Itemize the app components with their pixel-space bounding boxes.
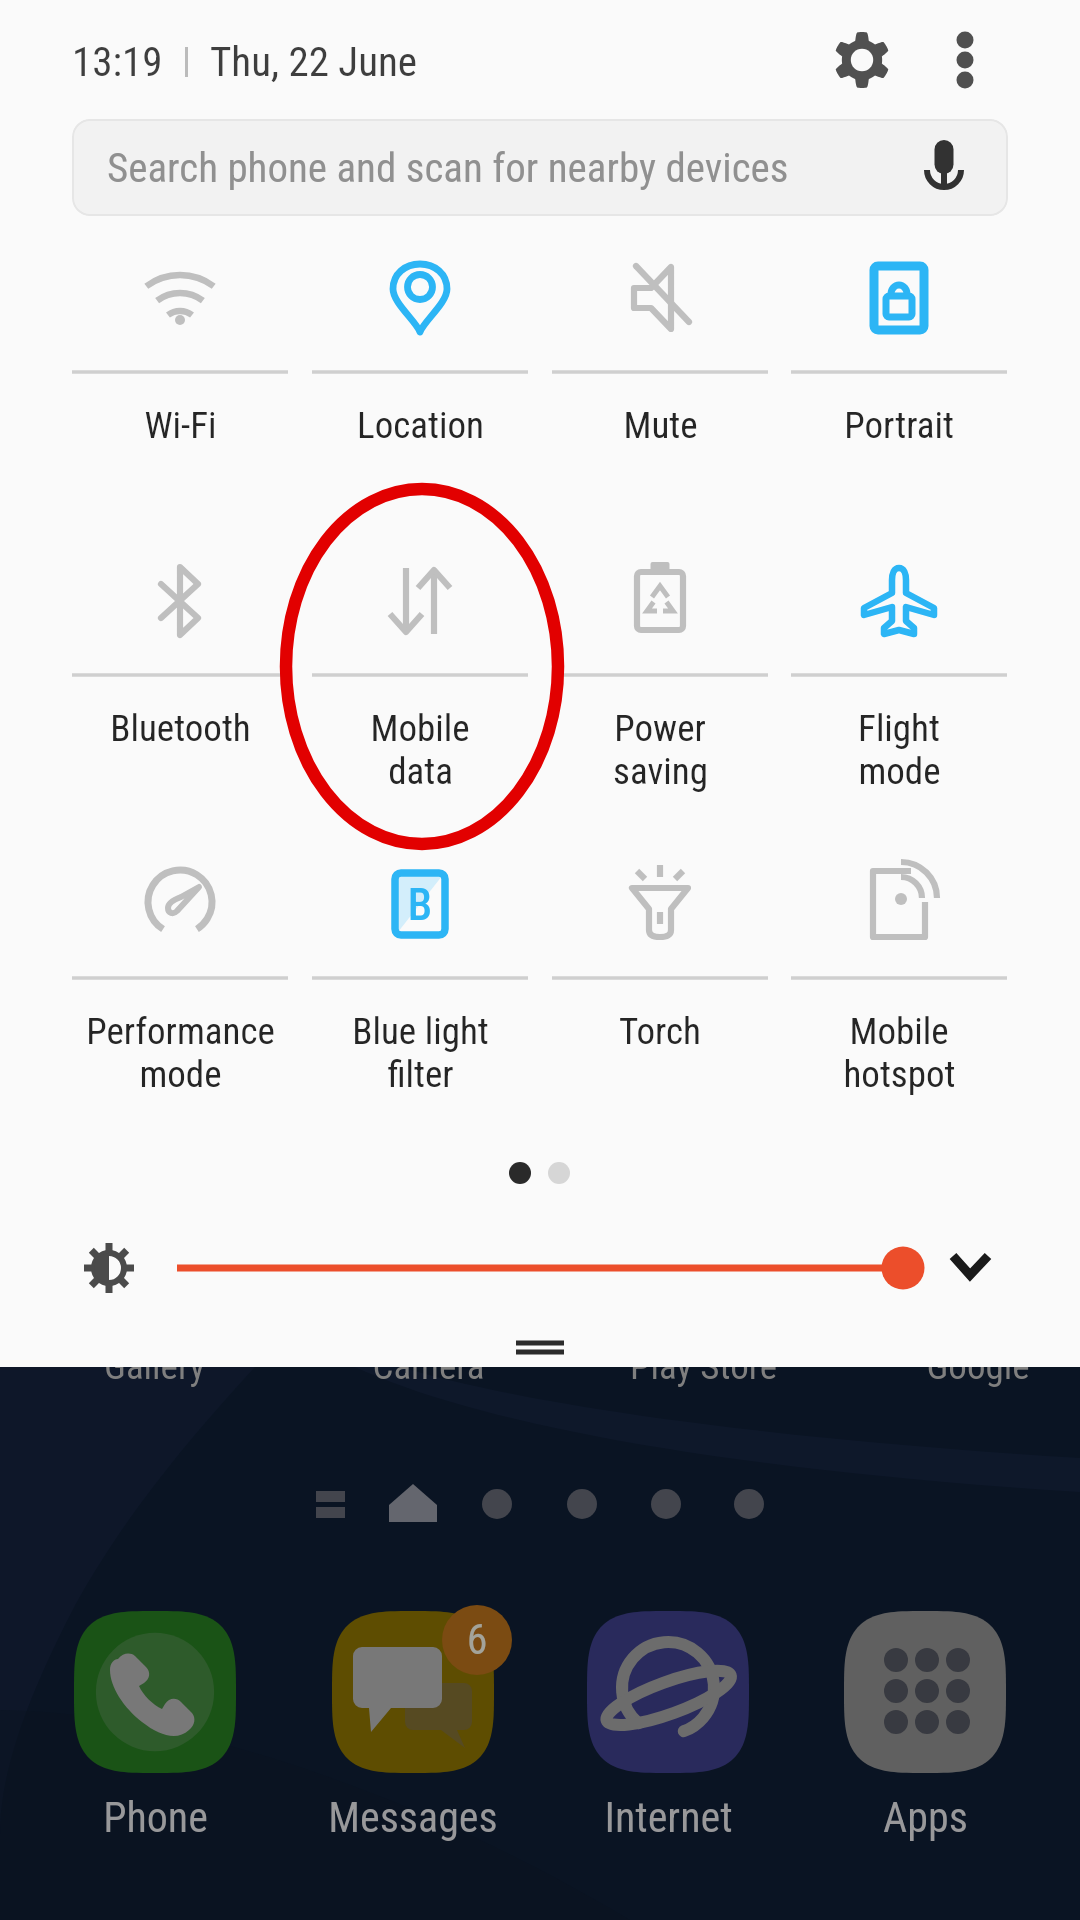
staticText: B <box>400 879 440 931</box>
staticText: Flight <box>858 707 940 750</box>
staticText: Blue light <box>352 1010 489 1053</box>
staticText: Internet <box>604 1793 733 1842</box>
staticText: Messages <box>328 1793 498 1842</box>
staticText: Google <box>926 1345 1030 1388</box>
staticText: Power <box>614 707 706 750</box>
staticText: data <box>388 750 453 793</box>
staticText: Performance <box>86 1010 275 1053</box>
button[interactable]: More options <box>921 16 1009 104</box>
button[interactable]: Collapse quick settings <box>440 1310 640 1367</box>
staticText: Play Store <box>630 1345 777 1388</box>
button[interactable]: Apps <box>795 1598 1055 1828</box>
staticText: saving <box>613 750 708 793</box>
staticText: mode <box>858 750 941 793</box>
button[interactable]: Wi-Fi <box>63 242 297 492</box>
staticText: Gallery <box>104 1345 205 1388</box>
staticText: Thu, 22 June <box>210 38 418 86</box>
button[interactable]: Blue light <box>303 848 537 1098</box>
button[interactable]: Internet <box>538 1598 798 1828</box>
staticText: mode <box>139 1053 222 1096</box>
button[interactable]: Power <box>543 545 777 795</box>
staticText: Apps <box>883 1793 968 1842</box>
button[interactable]: Flight <box>782 545 1016 795</box>
staticText: hotspot <box>843 1053 956 1096</box>
staticText: Torch <box>619 1010 701 1053</box>
staticText: Phone <box>103 1793 208 1842</box>
button[interactable]: Settings <box>818 16 906 104</box>
staticText: Search phone and scan for nearby devices <box>107 144 789 192</box>
button[interactable]: Search phone and scan for nearby devices <box>72 119 1008 216</box>
staticText: Camera <box>372 1345 485 1388</box>
staticText: Location <box>357 404 484 447</box>
staticText: filter <box>387 1053 454 1096</box>
button[interactable]: Mute <box>543 242 777 492</box>
button[interactable]: Messages <box>283 1598 543 1828</box>
button[interactable]: Phone <box>25 1598 285 1828</box>
staticText: 6 <box>461 1615 493 1664</box>
button[interactable]: Brightness <box>150 1228 940 1308</box>
staticText: Wi-Fi <box>144 404 217 447</box>
button[interactable]: Portrait <box>782 242 1016 492</box>
staticText: Mute <box>623 404 698 447</box>
button[interactable]: Home screen pages <box>300 1470 770 1540</box>
button[interactable]: Performance <box>63 848 297 1098</box>
staticText: Portrait <box>844 404 954 447</box>
staticText: 13:19 <box>72 38 163 86</box>
staticText: Mobile <box>370 707 470 750</box>
button[interactable]: Expand brightness settings <box>930 1228 1010 1308</box>
button[interactable]: Mobile <box>782 848 1016 1098</box>
button[interactable]: Mobile <box>303 545 537 795</box>
button[interactable]: Bluetooth <box>63 545 297 795</box>
staticText: Mobile <box>849 1010 949 1053</box>
staticText: Bluetooth <box>110 707 251 750</box>
button[interactable]: Location <box>303 242 537 492</box>
button[interactable]: Torch <box>543 848 777 1098</box>
